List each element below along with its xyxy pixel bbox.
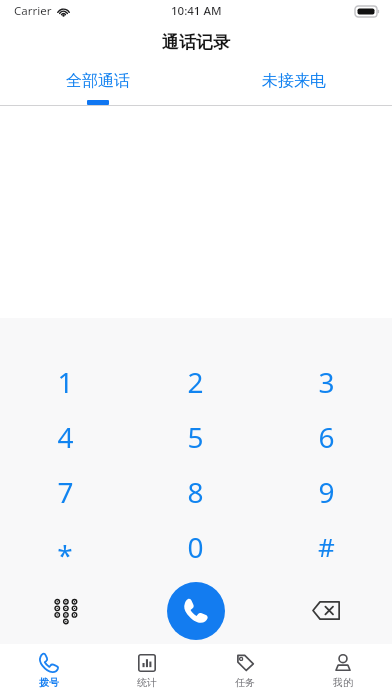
staticText: #	[318, 529, 335, 564]
staticText: 拨号	[39, 676, 59, 689]
button[interactable]: 3	[261, 354, 392, 409]
staticText: 1	[57, 363, 74, 401]
button[interactable]: Backspace	[261, 577, 392, 644]
button[interactable]: Call	[167, 582, 225, 640]
staticText: 任务	[235, 676, 255, 689]
button[interactable]: 7	[0, 464, 130, 519]
button[interactable]: 任务	[196, 644, 294, 696]
staticText: 7	[57, 473, 74, 511]
staticText: 3	[318, 363, 335, 401]
button[interactable]: 0	[130, 519, 261, 574]
button[interactable]: #	[261, 519, 392, 574]
button[interactable]: 2	[130, 354, 261, 409]
button[interactable]: 全部通话	[0, 62, 196, 106]
staticText: Carrier	[14, 3, 52, 19]
staticText: 2	[187, 363, 204, 401]
staticText: 全部通话	[66, 71, 130, 91]
button[interactable]: 统计	[98, 644, 196, 696]
staticText: *	[57, 536, 73, 574]
staticText: 9	[318, 473, 335, 511]
staticText: 通话记录	[162, 32, 230, 53]
button[interactable]: 9	[261, 464, 392, 519]
button[interactable]: 8	[130, 464, 261, 519]
button[interactable]: 未接来电	[196, 62, 392, 106]
staticText: 5	[187, 418, 204, 456]
button[interactable]: 我的	[294, 644, 392, 696]
button[interactable]: 1	[0, 354, 130, 409]
button[interactable]: 5	[130, 409, 261, 464]
button[interactable]: 拨号	[0, 644, 98, 696]
button[interactable]: *	[0, 519, 130, 574]
button[interactable]: 4	[0, 409, 130, 464]
staticText: 统计	[137, 676, 157, 689]
staticText: 0	[187, 528, 204, 566]
staticText: 4	[57, 418, 74, 456]
staticText: 6	[318, 418, 335, 456]
staticText: 10:41 AM	[171, 3, 222, 19]
staticText: 8	[187, 473, 204, 511]
button[interactable]: Keypad	[0, 577, 130, 644]
staticText: 我的	[333, 676, 353, 689]
button[interactable]: 6	[261, 409, 392, 464]
staticText: 未接来电	[262, 71, 326, 91]
